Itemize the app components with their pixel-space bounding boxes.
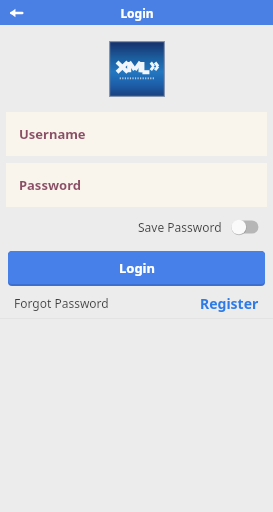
- button[interactable]: Register: [200, 294, 259, 313]
- staticText: Password: [19, 176, 81, 194]
- staticText: Save Password: [138, 219, 222, 235]
- button[interactable]: Login: [8, 251, 265, 286]
- staticText: Forgot Password: [14, 295, 109, 311]
- staticText: Login: [120, 5, 154, 21]
- button[interactable]: Save Password: [138, 219, 259, 235]
- staticText: Username: [19, 125, 86, 143]
- button[interactable]: Username: [6, 112, 267, 156]
- button[interactable]: Forgot Password: [14, 295, 109, 311]
- button[interactable]: Password: [6, 163, 267, 207]
- button[interactable]: Back: [6, 3, 26, 23]
- staticText: Register: [200, 294, 259, 313]
- staticText: Login: [119, 259, 155, 277]
